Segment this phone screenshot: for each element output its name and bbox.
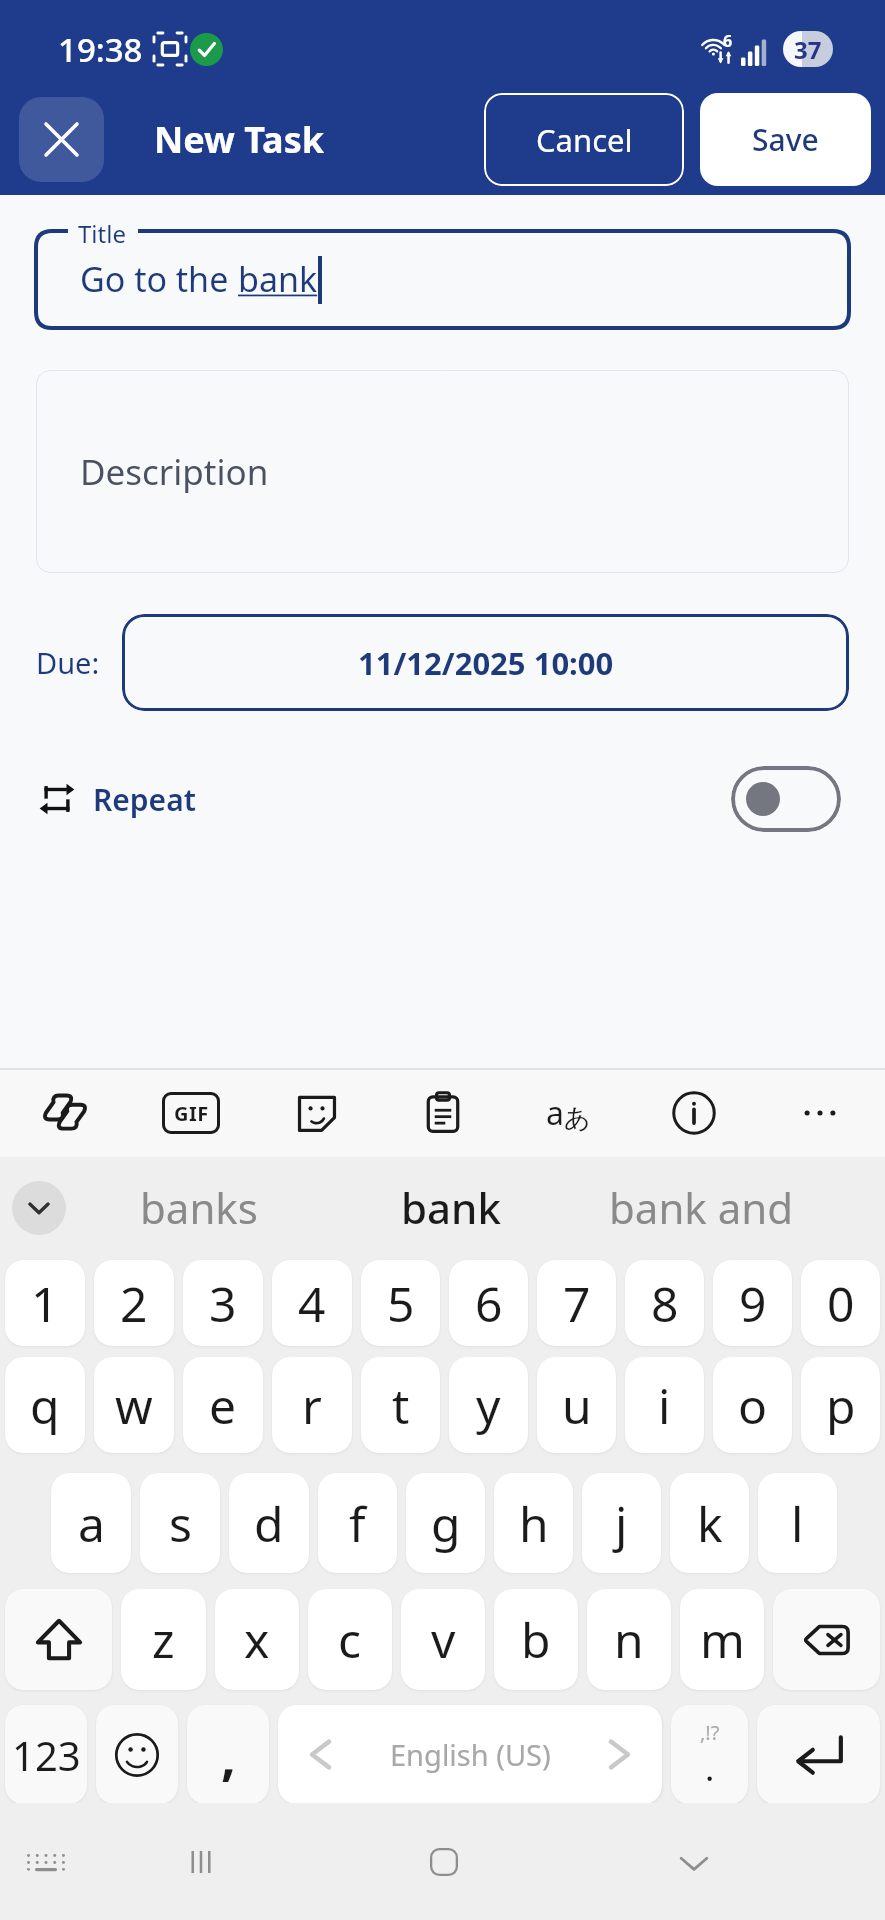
button[interactable]: ,: [187, 1705, 269, 1804]
staticText: 4: [298, 1271, 326, 1336]
staticText: Go to the: [80, 256, 238, 302]
staticText: p: [826, 1373, 856, 1438]
staticText: bank: [238, 256, 318, 302]
staticText: s: [169, 1491, 192, 1556]
button[interactable]: t: [361, 1357, 440, 1453]
staticText: bank: [401, 1179, 501, 1236]
staticText: 8: [651, 1271, 679, 1336]
button[interactable]: o: [713, 1357, 792, 1453]
staticText: x: [244, 1607, 270, 1672]
button[interactable]: 6: [449, 1260, 528, 1346]
staticText: c: [338, 1607, 362, 1672]
button[interactable]: ,!?: [671, 1705, 748, 1804]
staticText: t: [392, 1373, 410, 1438]
button[interactable]: Recent apps: [155, 1803, 247, 1920]
staticText: 123: [12, 1728, 81, 1782]
button[interactable]: g: [406, 1473, 485, 1573]
button[interactable]: banks: [73, 1157, 325, 1258]
button[interactable]: bank and: [576, 1157, 827, 1258]
staticText: 6: [723, 30, 733, 52]
button[interactable]: bank: [325, 1157, 576, 1258]
button[interactable]: Backspace: [773, 1589, 880, 1690]
button[interactable]: y: [449, 1357, 528, 1453]
button[interactable]: More: [785, 1078, 855, 1148]
staticText: Title: [78, 217, 126, 250]
staticText: l: [791, 1491, 804, 1556]
button[interactable]: m: [680, 1589, 764, 1690]
staticText: 19:38: [58, 27, 143, 72]
staticText: 3: [209, 1271, 237, 1336]
button[interactable]: w: [94, 1357, 174, 1453]
staticText: f: [349, 1491, 366, 1556]
staticText: 2: [120, 1271, 148, 1336]
button[interactable]: z: [121, 1589, 206, 1690]
button[interactable]: Clipboard: [408, 1078, 478, 1148]
button[interactable]: 0: [801, 1260, 880, 1346]
button[interactable]: 11/12/2025 10:00: [122, 614, 849, 711]
button[interactable]: f: [318, 1473, 397, 1573]
button[interactable]: l: [758, 1473, 837, 1573]
staticText: Cancel: [536, 119, 633, 161]
button[interactable]: e: [183, 1357, 263, 1453]
button[interactable]: 8: [625, 1260, 704, 1346]
button[interactable]: Repeat toggle: [731, 766, 841, 832]
button[interactable]: j: [582, 1473, 661, 1573]
button[interactable]: 1: [5, 1260, 85, 1346]
button[interactable]: q: [5, 1357, 85, 1453]
button[interactable]: Expand: [12, 1181, 66, 1235]
button[interactable]: Bixby: [30, 1078, 100, 1148]
button[interactable]: n: [587, 1589, 671, 1690]
button[interactable]: Home: [398, 1803, 490, 1920]
button[interactable]: 5: [361, 1260, 440, 1346]
button[interactable]: h: [494, 1473, 573, 1573]
button[interactable]: Close: [19, 97, 104, 182]
staticText: w: [115, 1373, 153, 1438]
button[interactable]: u: [537, 1357, 616, 1453]
staticText: English (US): [390, 1735, 551, 1774]
staticText: y: [476, 1373, 501, 1438]
button[interactable]: Repeat: [40, 749, 841, 849]
button[interactable]: a: [51, 1473, 131, 1573]
button[interactable]: Translate: [533, 1078, 603, 1148]
button[interactable]: Cancel: [484, 93, 684, 186]
button[interactable]: 3: [183, 1260, 263, 1346]
button[interactable]: 7: [537, 1260, 616, 1346]
staticText: 0: [827, 1271, 855, 1336]
button[interactable]: Info: [659, 1078, 729, 1148]
button[interactable]: i: [625, 1357, 704, 1453]
staticText: e: [209, 1373, 237, 1438]
button[interactable]: English (US): [278, 1705, 662, 1804]
button[interactable]: Hide keyboard: [648, 1803, 740, 1920]
staticText: 9: [739, 1271, 767, 1336]
staticText: u: [562, 1373, 592, 1438]
button[interactable]: Description: [36, 370, 849, 573]
staticText: a: [78, 1491, 105, 1556]
button[interactable]: k: [670, 1473, 749, 1573]
button[interactable]: GIF: [156, 1078, 226, 1148]
button[interactable]: Shift: [5, 1589, 112, 1690]
staticText: a: [546, 1091, 564, 1135]
button[interactable]: v: [401, 1589, 485, 1690]
button[interactable]: Save: [700, 93, 871, 186]
button[interactable]: Enter: [757, 1705, 880, 1804]
button[interactable]: 2: [94, 1260, 174, 1346]
staticText: v: [431, 1607, 456, 1672]
button[interactable]: Stickers: [282, 1078, 352, 1148]
staticText: j: [615, 1491, 628, 1556]
button[interactable]: c: [308, 1589, 392, 1690]
button[interactable]: 9: [713, 1260, 792, 1346]
button[interactable]: d: [229, 1473, 309, 1573]
button[interactable]: Emoji: [96, 1705, 178, 1804]
button[interactable]: s: [140, 1473, 220, 1573]
button[interactable]: r: [272, 1357, 352, 1453]
button[interactable]: 123: [5, 1705, 87, 1804]
staticText: あ: [564, 1102, 591, 1135]
staticText: 37: [794, 33, 822, 66]
staticText: Repeat: [93, 779, 196, 820]
button[interactable]: b: [494, 1589, 578, 1690]
button[interactable]: x: [215, 1589, 299, 1690]
staticText: Due:: [36, 643, 100, 682]
button[interactable]: Show keyboard: [0, 1803, 92, 1920]
button[interactable]: 4: [272, 1260, 352, 1346]
button[interactable]: p: [801, 1357, 880, 1453]
